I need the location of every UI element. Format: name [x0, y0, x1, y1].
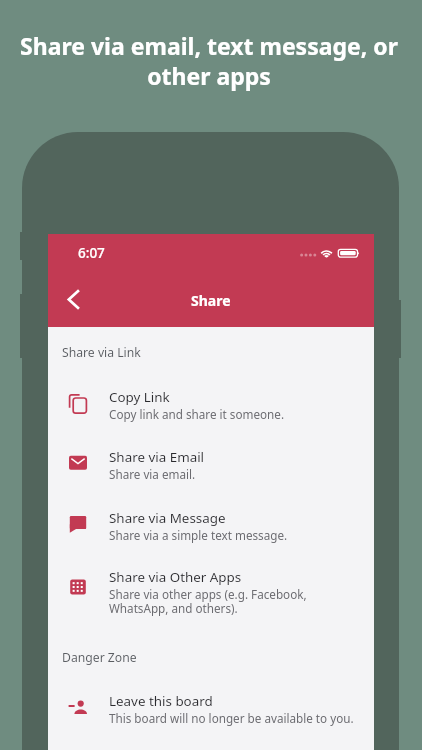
staticText: Share via Message: [109, 509, 226, 527]
button[interactable]: Share via Email: [48, 442, 374, 494]
button[interactable]: Share via Other Apps: [48, 562, 374, 614]
staticText: Copy Link: [109, 388, 170, 406]
staticText: Share via Other Apps: [109, 568, 242, 586]
staticText: Copy link and share it someone.: [109, 406, 285, 422]
staticText: Share via Link: [62, 344, 141, 361]
staticText: Leave this board: [109, 692, 213, 710]
button[interactable]: Back: [51, 277, 96, 322]
staticText: Share: [191, 291, 231, 310]
staticText: Share via Email: [109, 448, 205, 466]
staticText: 6:07: [78, 244, 105, 262]
staticText: Share via a simple text message.: [109, 527, 288, 543]
staticText: Share via other apps (e.g. Facebook, Wha…: [109, 586, 307, 616]
button[interactable]: Copy Link: [48, 382, 374, 434]
button[interactable]: Leave this board: [48, 686, 374, 738]
staticText: Danger Zone: [62, 649, 137, 666]
staticText: Share via email, text message, or other …: [12, 30, 406, 91]
staticText: Share via email.: [109, 466, 196, 482]
staticText: This board will no longer be available t…: [109, 710, 354, 726]
button[interactable]: Share via Message: [48, 503, 374, 555]
